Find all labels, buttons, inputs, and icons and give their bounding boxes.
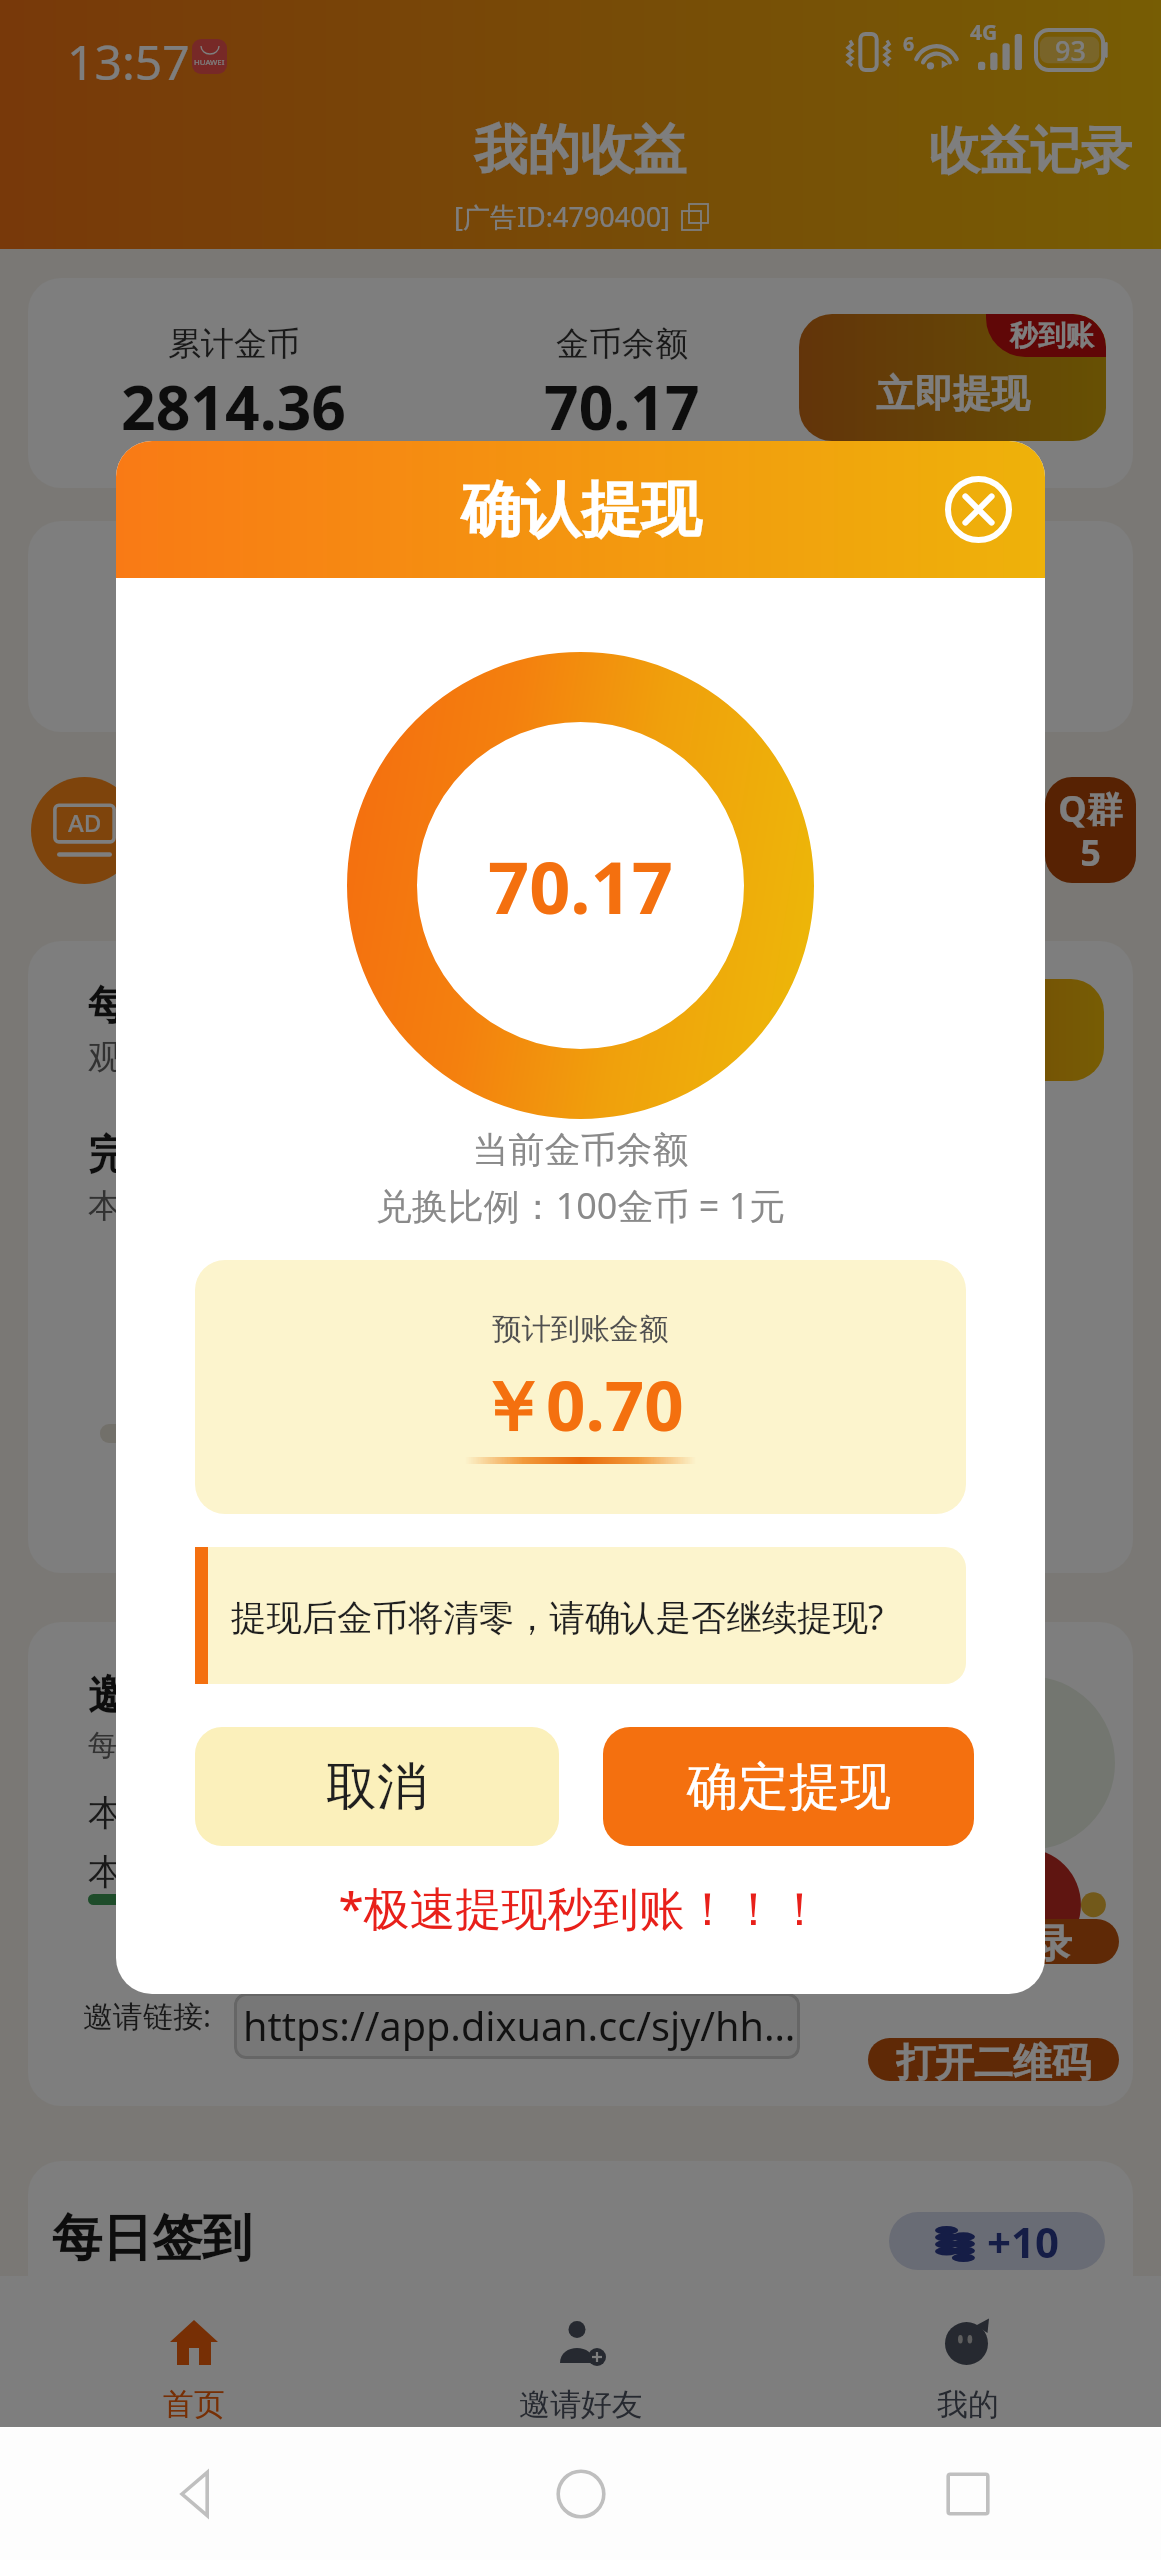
staticText: 邀请链接: [83, 1995, 212, 2036]
staticText: 我的收益 [474, 117, 687, 184]
staticText: 查看记录 [916, 1919, 1072, 1964]
staticText: 首页 [163, 2385, 225, 2424]
staticText: 累计金币 [168, 323, 300, 365]
staticText: 秒到账 [1010, 318, 1094, 353]
staticText: 4G [970, 18, 998, 47]
staticText: 本周已完成 [88, 1185, 253, 1227]
staticText: 本周收益 [88, 1850, 229, 1894]
staticText: 邀请好友 [519, 2385, 643, 2424]
staticText: 6 [903, 30, 915, 57]
staticText: 每日签到 [52, 2207, 253, 2270]
staticText: 立即提现 [876, 370, 1030, 418]
staticText: 70.17 [488, 837, 673, 935]
staticText: 观看视频得金币 [88, 1036, 319, 1078]
staticText: HUAWEI [194, 57, 225, 68]
staticText: AD [68, 806, 102, 839]
button[interactable]: 确定提现 [603, 1727, 974, 1846]
staticText: 打开二维码 [896, 2038, 1091, 2081]
staticText: 确认提现 [461, 472, 701, 548]
staticText: 完成任务 [88, 1130, 248, 1180]
staticText: 每日任务 [88, 981, 248, 1031]
staticText: Q群 5 [1058, 784, 1123, 877]
staticText: 邀请好友 [88, 1669, 256, 1722]
staticText: [广告ID:4790400] [454, 198, 670, 235]
staticText: 每位好友可得奖励 [88, 1727, 321, 1764]
button[interactable]: 取消 [195, 1727, 559, 1846]
staticText: *极速提现秒到账！！！ [116, 1876, 1045, 1939]
staticText: 取消 [326, 1755, 428, 1819]
staticText: 当前金币余额 [116, 1127, 1045, 1172]
staticText: 提现后金币将清零，请确认是否继续提现? [231, 1592, 884, 1640]
button[interactable]: Watch ad [31, 777, 138, 884]
button[interactable]: 我的 [774, 2276, 1161, 2428]
staticText: 本周邀请人数 [88, 1791, 299, 1835]
staticText: 确定提现 [687, 1755, 891, 1819]
staticText: 2814.36 [121, 365, 346, 448]
staticText: 我的 [937, 2385, 999, 2424]
staticText: 收益记录 [929, 119, 1132, 183]
staticText: +10 [987, 2213, 1060, 2270]
staticText: 金币余额 [556, 323, 688, 365]
staticText: 93 [1055, 32, 1086, 69]
button[interactable]: 立即提现 [799, 314, 1106, 441]
button[interactable]: Close [945, 476, 1012, 543]
staticText: ￥0.70 [477, 1357, 684, 1451]
staticText: https://app.dixuan.cc/sjy/hh… [243, 1999, 796, 2053]
staticText: 兑换比例：100金币 = 1元 [116, 1181, 1045, 1230]
staticText: 13:57 [67, 29, 190, 94]
staticText: 70.17 [544, 365, 700, 448]
staticText: 预计到账金额 [492, 1311, 669, 1348]
button[interactable]: 邀请好友 [387, 2276, 774, 2428]
button[interactable]: 首页 [0, 2276, 387, 2428]
